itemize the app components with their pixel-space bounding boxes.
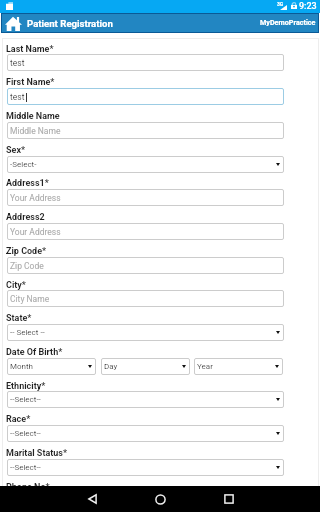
staticText: Address1* — [6, 178, 49, 189]
staticText: Patient Registration — [27, 18, 113, 29]
button[interactable]: -Select- — [7, 156, 284, 173]
button[interactable]: Home — [2, 16, 113, 31]
button[interactable]: --Select-- — [7, 425, 284, 442]
staticText: -- Select -- — [10, 328, 45, 337]
button[interactable]: test — [7, 54, 284, 71]
button[interactable]: Back — [70, 486, 115, 512]
staticText: 9:23 — [299, 1, 317, 12]
staticText: Your Address — [10, 193, 61, 203]
staticText: --Select-- — [10, 463, 41, 472]
button[interactable]: MyDemoPractice — [260, 19, 318, 27]
staticText: Your Address — [10, 227, 61, 237]
staticText: --Select-- — [10, 429, 41, 438]
button[interactable]: Zip Code — [7, 257, 284, 274]
button[interactable]: Home — [138, 486, 183, 512]
staticText: City* — [6, 280, 26, 291]
staticText: --Select-- — [10, 395, 41, 404]
button[interactable]: Year — [194, 358, 283, 375]
button[interactable]: Your Address — [7, 223, 284, 240]
staticText: Month — [10, 362, 33, 371]
staticText: Last Name* — [6, 44, 54, 55]
staticText: Middle Name — [10, 126, 61, 136]
button[interactable]: Day — [101, 358, 190, 375]
staticText: First Name* — [6, 77, 55, 88]
button[interactable]: --Select-- — [7, 459, 284, 476]
staticText: test — [10, 92, 25, 102]
button[interactable]: Middle Name — [7, 122, 284, 139]
staticText: Year — [197, 362, 213, 371]
staticText: Zip Code — [10, 261, 44, 271]
staticText: -Select- — [10, 160, 37, 169]
button[interactable]: Recent apps — [206, 486, 251, 512]
staticText: Race* — [6, 414, 31, 425]
other: Home — [5, 16, 22, 31]
staticText: State* — [6, 313, 32, 324]
button[interactable]: -- Select -- — [7, 324, 284, 341]
button[interactable]: Your Address — [7, 189, 284, 206]
staticText: Middle Name — [6, 111, 60, 122]
staticText: 3G — [277, 1, 284, 7]
staticText: City Name — [10, 294, 50, 304]
staticText: Day — [104, 362, 118, 371]
staticText: Date Of Birth* — [6, 347, 63, 358]
button[interactable]: City Name — [7, 290, 284, 307]
button[interactable]: Month — [7, 358, 96, 375]
staticText: Sex* — [6, 145, 26, 156]
staticText: Phone No* — [6, 482, 50, 493]
button[interactable]: --Select-- — [7, 391, 284, 408]
staticText: Marital Status* — [6, 448, 68, 459]
staticText: test — [10, 58, 25, 68]
staticText: Zip Code* — [6, 246, 47, 257]
staticText: Address2 — [6, 212, 45, 223]
button[interactable]: test — [7, 88, 284, 105]
staticText: Ethnicity* — [6, 381, 46, 392]
staticText: MyDemoPractice — [260, 18, 316, 26]
